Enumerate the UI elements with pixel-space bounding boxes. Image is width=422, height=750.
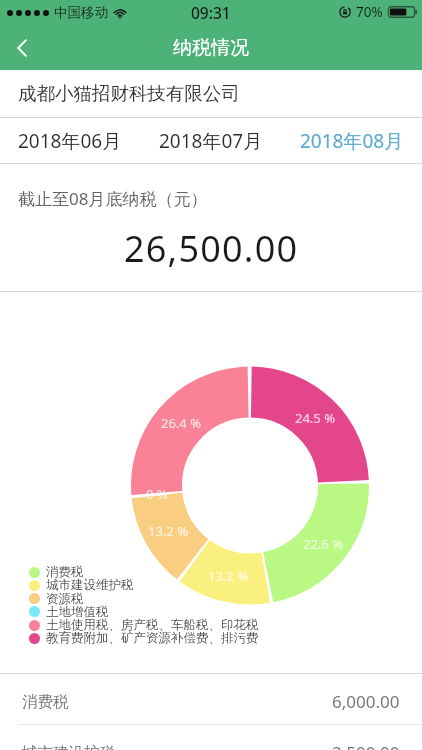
staticText: 70% — [356, 3, 383, 21]
staticText: 26.4 % — [161, 414, 201, 432]
staticText: 26,500.00 — [124, 224, 299, 273]
staticText: 24.5 % — [295, 409, 335, 427]
staticText: 2,500.00 — [332, 741, 400, 750]
staticText: 截止至08月底纳税（元） — [18, 187, 208, 210]
staticText: 消费税 — [46, 564, 84, 580]
staticText: 2018年08月 — [300, 128, 404, 154]
staticText: 2018年07月 — [159, 128, 263, 154]
staticText: 13.2 % — [208, 567, 248, 585]
staticText: 纳税情况 — [173, 36, 249, 60]
staticText: 6,000.00 — [332, 690, 400, 713]
button[interactable]: 消费税 — [0, 679, 422, 724]
staticText: 22.6 % — [303, 535, 343, 553]
staticText: 土地增值税 — [46, 604, 109, 620]
button[interactable]: 城市建设护税 — [0, 730, 422, 750]
button[interactable]: 2018年07月 — [140, 118, 281, 163]
staticText: 2018年06月 — [18, 128, 122, 154]
staticText: 城市建设维护税 — [46, 577, 134, 593]
staticText: 土地使用税、房产税、车船税、印花税 — [46, 617, 259, 633]
staticText: 资源税 — [46, 591, 84, 607]
staticText: 成都小猫招财科技有限公司 — [18, 82, 240, 105]
staticText: 消费税 — [22, 692, 69, 712]
staticText: 城市建设护税 — [22, 743, 115, 750]
staticText: 09:31 — [191, 2, 231, 23]
staticText: 教育费附加、矿产资源补偿费、排污费 — [46, 630, 259, 646]
staticText: 13.2 % — [148, 522, 188, 540]
button[interactable]: 2018年08月 — [281, 118, 422, 163]
button[interactable]: Back — [0, 26, 46, 70]
button[interactable]: 2018年06月 — [0, 118, 140, 163]
staticText: 中国移动 — [54, 4, 108, 21]
staticText: 0 % — [146, 485, 168, 503]
